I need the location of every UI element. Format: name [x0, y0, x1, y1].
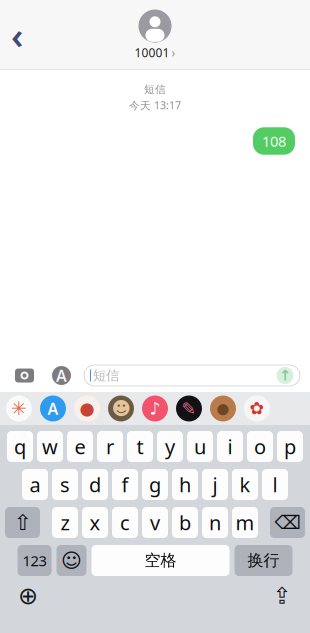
staticText: ⊕ [18, 582, 38, 610]
button[interactable]: Next keyboard [13, 581, 43, 611]
staticText: d [89, 471, 101, 498]
staticText: x [89, 509, 100, 536]
button[interactable]: Send [276, 366, 294, 384]
button[interactable]: More stickers [244, 395, 270, 421]
button[interactable]: n [202, 507, 228, 538]
staticText: 10001 [134, 44, 169, 60]
staticText: A [56, 365, 67, 386]
staticText: c [120, 509, 130, 536]
button[interactable]: h [172, 469, 198, 500]
staticText: j [212, 471, 217, 498]
staticText: q [14, 433, 26, 460]
button[interactable]: x [82, 507, 108, 538]
button[interactable]: z [52, 507, 78, 538]
button[interactable]: Stickers [74, 395, 100, 421]
staticText: f [121, 471, 128, 498]
staticText: ‹ [11, 11, 23, 59]
staticText: t [136, 433, 143, 460]
button[interactable]: f [112, 469, 138, 500]
staticText: o [254, 433, 266, 460]
staticText: h [179, 471, 191, 498]
button[interactable]: b [172, 507, 198, 538]
staticText: ↑ [279, 367, 291, 384]
button[interactable]: App Store [40, 395, 66, 421]
staticText: n [209, 509, 221, 536]
staticText: v [150, 509, 160, 536]
button[interactable]: Photos [6, 395, 32, 421]
staticText: b [179, 509, 191, 536]
staticText: ☻ [111, 398, 130, 419]
staticText: m [235, 509, 254, 536]
button[interactable]: y [157, 431, 183, 462]
button[interactable]: p [277, 431, 303, 462]
button[interactable]: l [262, 469, 288, 500]
staticText: y [165, 433, 175, 460]
button[interactable]: o [247, 431, 273, 462]
button[interactable]: e [67, 431, 93, 462]
staticText: ● [79, 399, 94, 418]
staticText: l [272, 471, 277, 498]
button[interactable]: i [217, 431, 243, 462]
staticText: 123 [22, 551, 46, 570]
staticText: ⇪ [272, 583, 291, 609]
button[interactable]: Camera [14, 365, 35, 385]
staticText: p [284, 433, 296, 460]
button[interactable]: d [82, 469, 108, 500]
staticText: u [194, 433, 206, 460]
staticText: 今天 13:17 [129, 98, 181, 112]
button[interactable]: Cookie sticker [210, 395, 236, 421]
staticText: r [106, 433, 114, 460]
button[interactable]: Digital Touch [176, 395, 202, 421]
staticText: s [60, 471, 70, 498]
staticText: 空格 [144, 551, 176, 570]
button[interactable]: q [7, 431, 33, 462]
staticText: z [60, 509, 69, 536]
staticText: k [239, 471, 250, 498]
staticText: ✿ [249, 399, 264, 418]
button[interactable]: j [202, 469, 228, 500]
button[interactable]: 换行 [234, 545, 292, 576]
button[interactable]: r [97, 431, 123, 462]
button[interactable]: 空格 [91, 545, 229, 576]
staticText: e [74, 433, 85, 460]
staticText: 108 [262, 131, 286, 151]
staticText: ⇧ [13, 510, 31, 535]
button[interactable]: w [37, 431, 63, 462]
staticText: g [149, 471, 161, 498]
button[interactable]: Emoji [56, 545, 86, 576]
staticText: i [227, 433, 232, 460]
button[interactable]: m [232, 507, 258, 538]
staticText: 换行 [247, 551, 279, 570]
staticText: ✳ [11, 398, 27, 419]
staticText: w [42, 433, 58, 460]
button[interactable]: s [52, 469, 78, 500]
staticText: › [171, 44, 175, 60]
staticText: 短信 [144, 83, 166, 96]
button[interactable]: a [22, 469, 48, 500]
button[interactable]: Music [142, 395, 168, 421]
staticText: ☺ [61, 549, 82, 572]
staticText: ⌫ [274, 512, 300, 533]
staticText: 短信 [93, 367, 119, 384]
button[interactable]: v [142, 507, 168, 538]
button[interactable]: Back [0, 11, 34, 59]
button[interactable]: Apps [51, 365, 72, 385]
button[interactable]: k [232, 469, 258, 500]
button[interactable]: Shift [5, 507, 40, 538]
button[interactable]: c [112, 507, 138, 538]
staticText: ● [216, 400, 229, 417]
button[interactable]: g [142, 469, 168, 500]
staticText: ✎ [181, 399, 196, 418]
button[interactable]: Delete [270, 507, 305, 538]
button[interactable]: Memoji [108, 395, 134, 421]
button[interactable]: t [127, 431, 153, 462]
staticText: A [47, 398, 58, 419]
button[interactable]: 123 [17, 545, 51, 576]
staticText: a [29, 471, 40, 498]
button[interactable]: Dictation [267, 581, 297, 611]
staticText: ♪ [149, 399, 160, 418]
button[interactable]: 10001 [134, 9, 175, 60]
button[interactable]: u [187, 431, 213, 462]
